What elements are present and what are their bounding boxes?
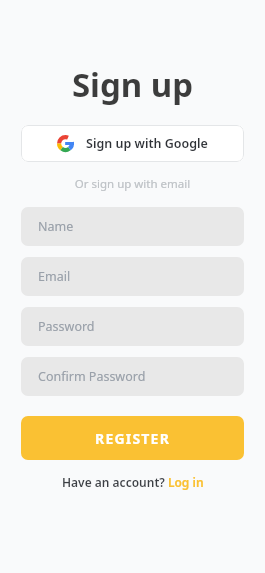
staticText: Or sign up with email xyxy=(21,176,244,192)
staticText: Name xyxy=(38,218,74,235)
staticText: REGISTER xyxy=(95,429,171,448)
staticText: Password xyxy=(38,318,95,335)
staticText: Have an account? Log in xyxy=(62,474,204,490)
button[interactable]: Email xyxy=(21,257,244,296)
staticText: Sign up with Google xyxy=(86,135,208,152)
button[interactable]: Confirm Password xyxy=(21,357,244,396)
button[interactable]: REGISTER xyxy=(21,416,244,460)
staticText: Sign up xyxy=(21,62,244,107)
staticText: Email xyxy=(38,268,71,285)
staticText: Confirm Password xyxy=(38,368,146,385)
button[interactable]: Name xyxy=(21,207,244,246)
button[interactable]: Password xyxy=(21,307,244,346)
button[interactable]: Have an account? Log in xyxy=(62,474,204,490)
button[interactable]: Google logo xyxy=(21,125,244,162)
other: Google logo xyxy=(57,135,74,152)
